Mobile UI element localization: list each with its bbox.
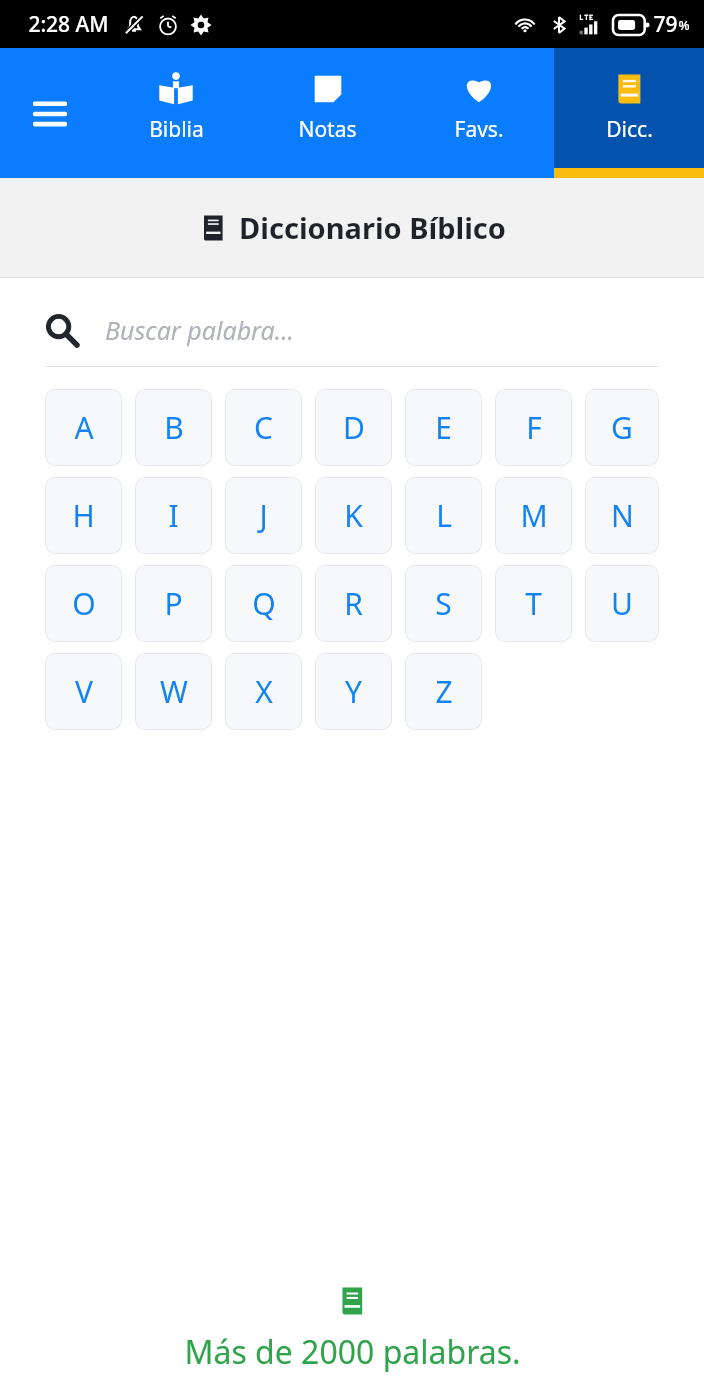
staticText: Notas (298, 115, 357, 144)
button[interactable]: E (405, 389, 482, 466)
button[interactable]: G (585, 389, 659, 466)
staticText: E (435, 407, 452, 448)
staticText: % (678, 16, 690, 34)
staticText: R (344, 583, 363, 624)
button[interactable]: P (135, 565, 212, 642)
button[interactable]: N (585, 477, 659, 554)
button[interactable]: Z (405, 653, 482, 730)
button[interactable]: F (495, 389, 572, 466)
staticText: S (435, 583, 452, 624)
staticText: J (259, 495, 268, 536)
staticText: A (74, 407, 94, 448)
staticText: Diccionario Bíblico (239, 208, 506, 247)
staticText: P (164, 583, 183, 624)
staticText: B (164, 407, 184, 448)
staticText: Más de 2000 palabras. (184, 1330, 521, 1374)
button[interactable]: Buscar palabra... (45, 294, 659, 366)
button[interactable]: C (225, 389, 302, 466)
staticText: Dicc. (606, 115, 653, 144)
button[interactable]: W (135, 653, 212, 730)
button[interactable]: V (45, 653, 122, 730)
button[interactable]: X (225, 653, 302, 730)
button[interactable]: Notas (252, 48, 403, 178)
button[interactable]: O (45, 565, 122, 642)
button[interactable]: J (225, 477, 302, 554)
staticText: O (72, 583, 96, 624)
staticText: L (436, 495, 452, 536)
button[interactable]: T (495, 565, 572, 642)
button[interactable]: Biblia (100, 48, 252, 178)
button[interactable]: Q (225, 565, 302, 642)
staticText: Favs. (454, 115, 504, 144)
button[interactable]: D (315, 389, 392, 466)
staticText: U (611, 583, 633, 624)
staticText: 2:28 AM (28, 10, 109, 39)
button[interactable]: Menú (0, 48, 100, 178)
button[interactable]: R (315, 565, 392, 642)
button[interactable]: M (495, 477, 572, 554)
staticText: W (160, 671, 188, 712)
staticText: H (72, 495, 95, 536)
staticText: I (168, 495, 179, 536)
staticText: T (525, 583, 542, 624)
staticText: Y (345, 671, 362, 712)
staticText: N (611, 495, 634, 536)
staticText: Biblia (149, 115, 204, 144)
staticText: D (343, 407, 365, 448)
button[interactable]: B (135, 389, 212, 466)
staticText: Q (252, 583, 276, 624)
staticText: F (526, 407, 542, 448)
button[interactable]: S (405, 565, 482, 642)
staticText: G (611, 407, 633, 448)
button[interactable]: L (405, 477, 482, 554)
button[interactable]: H (45, 477, 122, 554)
staticText: K (344, 495, 363, 536)
button[interactable]: Favs. (403, 48, 554, 178)
staticText: Z (435, 671, 453, 712)
button[interactable]: K (315, 477, 392, 554)
staticText: 79 (653, 10, 678, 39)
staticText: V (75, 671, 93, 712)
button[interactable]: I (135, 477, 212, 554)
button[interactable]: Dicc. (554, 48, 704, 178)
button[interactable]: U (585, 565, 659, 642)
staticText: C (254, 407, 273, 448)
staticText: Buscar palabra... (105, 313, 294, 347)
staticText: M (520, 495, 548, 536)
staticText: X (255, 671, 273, 712)
button[interactable]: A (45, 389, 122, 466)
button[interactable]: Y (315, 653, 392, 730)
